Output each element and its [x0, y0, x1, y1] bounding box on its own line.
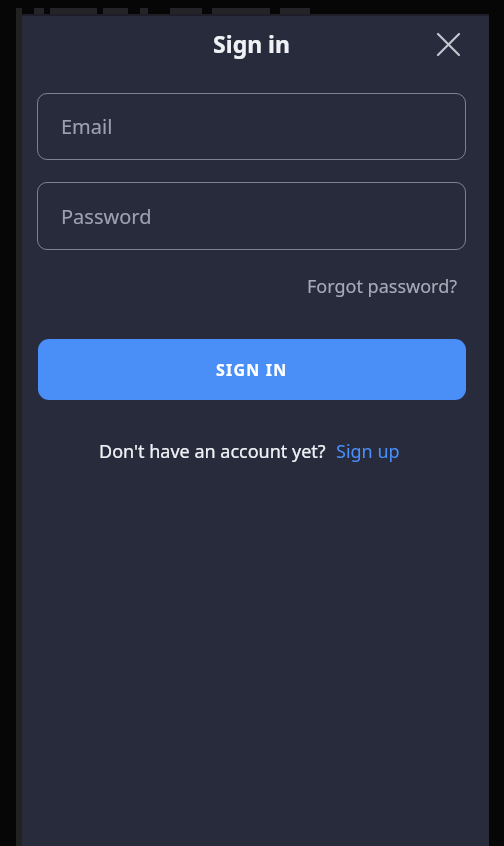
- staticText: Forgot password?: [307, 274, 458, 299]
- staticText: Sign in: [18, 28, 485, 59]
- staticText: Sign up: [336, 439, 400, 464]
- button[interactable]: Password: [37, 182, 466, 250]
- button[interactable]: Sign up: [336, 439, 400, 464]
- button[interactable]: Forgot password?: [307, 274, 458, 299]
- button[interactable]: SIGN IN: [38, 339, 466, 400]
- staticText: Don't have an account yet?: [99, 439, 326, 464]
- button[interactable]: Email: [37, 93, 466, 160]
- staticText: Email: [61, 113, 113, 140]
- staticText: SIGN IN: [216, 359, 288, 381]
- staticText: Password: [61, 203, 152, 230]
- button[interactable]: [432, 28, 464, 60]
